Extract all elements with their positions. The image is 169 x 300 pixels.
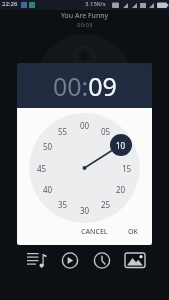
button[interactable]: OK: [122, 225, 144, 239]
staticText: 3.15K/s: [85, 0, 106, 8]
staticText: 00:09: [53, 69, 117, 103]
staticText: 25: [101, 199, 111, 210]
staticText: 45: [37, 163, 47, 174]
staticText: 50: [43, 141, 53, 152]
button[interactable]: [24, 247, 50, 273]
staticText: 30: [80, 205, 90, 216]
staticText: OK: [128, 227, 138, 237]
staticText: CANCEL: [81, 227, 108, 237]
button[interactable]: [122, 247, 148, 273]
staticText: 15: [122, 163, 132, 174]
staticText: 22:26: [2, 0, 18, 8]
staticText: 40: [43, 184, 53, 195]
staticText: 35: [58, 199, 68, 210]
staticText: You Are Funny: [61, 11, 109, 21]
staticText: 00: [80, 120, 90, 131]
button[interactable]: CANCEL: [75, 225, 114, 239]
button[interactable]: [89, 247, 115, 273]
staticText: 05: [101, 126, 111, 137]
staticText: 00:03: [77, 21, 93, 29]
button[interactable]: [57, 247, 83, 273]
staticText: 20: [116, 184, 126, 195]
staticText: 55: [58, 126, 68, 137]
staticText: 10: [116, 140, 126, 151]
